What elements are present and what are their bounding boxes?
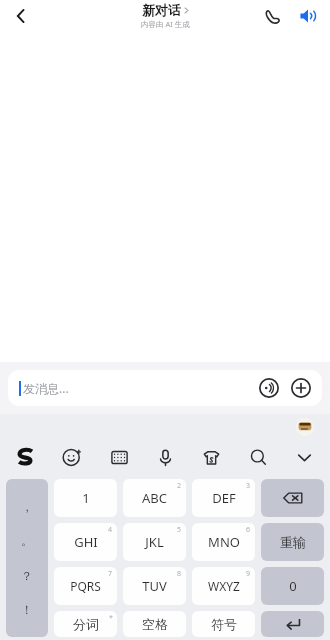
button[interactable]: WXYZ [192,567,255,605]
button[interactable]: 空格 [123,611,186,637]
button[interactable]: 发消息... [8,370,322,406]
button[interactable]: Enter [261,611,324,637]
staticText: 发消息... [23,380,69,396]
button[interactable]: Emoji [52,440,92,474]
button[interactable]: 1 [54,479,117,517]
staticText: 6 [246,525,251,535]
button[interactable]: PQRS [54,567,117,605]
staticText: 1 [82,489,90,507]
staticText: GHI [74,533,98,551]
button[interactable]: 符号 [192,611,255,637]
button[interactable]: Call [258,2,286,30]
button[interactable]: Back [4,0,38,32]
staticText: PQRS [70,578,101,594]
button[interactable]: GHI [54,523,117,561]
button[interactable]: ， [6,479,48,637]
button[interactable]: Backspace [261,479,324,517]
button[interactable]: Hide keyboard [284,440,324,474]
staticText: 7 [108,569,113,579]
button[interactable]: 新对话 [141,2,190,29]
staticText: 空格 [142,616,168,632]
button[interactable]: More [288,375,314,401]
staticText: 重输 [280,534,306,550]
button[interactable]: Voice [145,440,185,474]
staticText: 5 [177,525,182,535]
button[interactable]: MNO [192,523,255,561]
staticText: 符号 [211,616,237,632]
button[interactable]: 0 [261,567,324,605]
staticText: 9 [246,569,251,579]
button[interactable]: Speaker [294,2,322,30]
staticText: 内容由 AI 生成 [141,19,190,29]
staticText: 3 [246,481,251,491]
button[interactable]: 分词 [54,611,117,637]
button[interactable]: Search [238,440,278,474]
button[interactable]: ABC [123,479,186,517]
staticText: 2 [177,481,182,491]
staticText: 分词 [73,616,99,632]
staticText: MNO [208,533,240,551]
staticText: ！ [21,602,33,617]
staticText: JKL [145,533,164,551]
staticText: 。 [21,533,33,548]
button[interactable]: Keyboard layout [99,440,139,474]
button[interactable]: Sogou input [6,440,46,474]
button[interactable]: TUV [123,567,186,605]
staticText: ABC [142,489,167,507]
button[interactable]: DEF [192,479,255,517]
button[interactable]: Sticker [294,416,316,438]
staticText: DEF [212,489,236,507]
staticText: 新对话 [142,2,181,18]
staticText: ， [21,499,33,514]
button[interactable]: JKL [123,523,186,561]
button[interactable]: 重输 [261,523,324,561]
staticText: ？ [21,568,33,583]
staticText: * [109,613,113,623]
staticText: 8 [177,569,182,579]
button[interactable]: Voice input [256,375,282,401]
staticText: 4 [108,525,113,535]
staticText: TUV [142,577,167,595]
staticText: 0 [289,577,297,595]
button[interactable]: Skin [191,440,231,474]
staticText: WXYZ [208,578,240,594]
